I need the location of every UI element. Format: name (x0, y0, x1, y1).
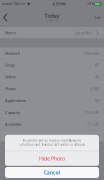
staticText: 87 (95, 62, 99, 68)
button[interactable]: Edit (91, 8, 104, 27)
button[interactable]: Songs (0, 59, 104, 71)
button[interactable]: Back (0, 8, 13, 27)
staticText: This photo will be hidden from Moments, (22, 139, 81, 143)
staticText: T-Mobile (13, 2, 25, 6)
staticText: T-Mobile (84, 50, 99, 56)
staticText: Cancel (43, 169, 60, 176)
staticText: Name (5, 30, 16, 35)
staticText: 4:39 PM (52, 1, 66, 7)
button[interactable]: Cancel (5, 167, 99, 178)
staticText: Edit (94, 15, 100, 20)
staticText: 7.1 GB (87, 121, 99, 127)
button[interactable]: Available (0, 118, 104, 130)
staticText: 2,390 (90, 86, 99, 91)
button[interactable]: Videos (0, 71, 104, 82)
button[interactable]: Name (0, 27, 104, 38)
staticText: Network (5, 50, 20, 56)
staticText: 11.6 GB (85, 110, 99, 115)
staticText: Today (44, 12, 59, 19)
staticText: Applications (5, 98, 26, 103)
button[interactable]: Hide Photo (5, 151, 99, 166)
button[interactable]: Capacity (0, 107, 104, 118)
staticText: 42 (95, 74, 99, 79)
staticText: Videos (5, 74, 16, 79)
button[interactable]: Photos (0, 83, 104, 94)
staticText: Capacity (5, 110, 20, 115)
staticText: Jason We... (75, 30, 94, 35)
staticText: 4:39 PM (46, 19, 58, 23)
staticText: Songs (5, 62, 15, 68)
staticText: 9.3.2 (91, 133, 99, 139)
button[interactable]: Applications (0, 95, 104, 106)
button[interactable]: Version (0, 130, 104, 142)
button[interactable]: Network (0, 47, 104, 59)
staticText: Collections and Years but still visible … (18, 143, 85, 146)
staticText: Version (5, 133, 18, 139)
staticText: Photos (5, 86, 16, 91)
staticText: Hide Photo (39, 155, 65, 162)
staticText: Available (5, 121, 21, 127)
staticText: 69 (95, 98, 99, 103)
staticText: 68% (88, 2, 94, 6)
